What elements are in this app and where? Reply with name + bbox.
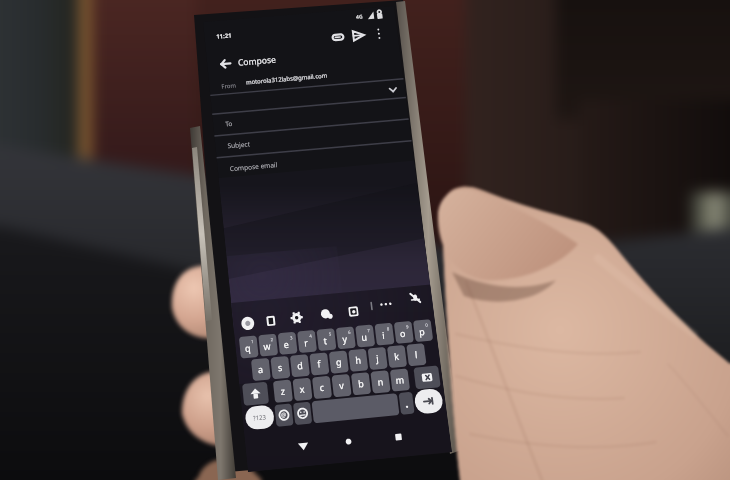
- button[interactable]: Navigate up: [213, 50, 239, 73]
- button[interactable]: At sign: [274, 403, 293, 427]
- button[interactable]: Clipboard: [259, 308, 281, 331]
- button[interactable]: [250, 357, 270, 380]
- button[interactable]: [355, 324, 375, 347]
- button[interactable]: Stickers: [315, 302, 337, 325]
- button[interactable]: Attach file: [325, 26, 351, 49]
- button[interactable]: More options: [368, 21, 392, 46]
- button[interactable]: [389, 368, 409, 391]
- button[interactable]: [406, 343, 426, 366]
- button[interactable]: [370, 370, 390, 393]
- button[interactable]: [335, 326, 355, 349]
- button[interactable]: Home: [333, 428, 365, 457]
- button[interactable]: [393, 320, 413, 343]
- button[interactable]: [331, 373, 351, 396]
- button[interactable]: [348, 348, 368, 371]
- button[interactable]: Shift: [242, 381, 269, 405]
- button[interactable]: Google search: [236, 312, 258, 335]
- button[interactable]: [350, 372, 370, 395]
- button[interactable]: [272, 379, 292, 402]
- button[interactable]: Period: [398, 391, 414, 414]
- button[interactable]: [289, 354, 309, 377]
- button[interactable]: Send: [347, 24, 373, 47]
- button[interactable]: More keyboard options: [372, 293, 393, 313]
- button[interactable]: [309, 352, 329, 375]
- button[interactable]: Enter: [413, 387, 443, 414]
- button[interactable]: Emoji: [292, 401, 311, 424]
- button[interactable]: GIF: [343, 300, 364, 321]
- button[interactable]: [297, 329, 317, 352]
- button[interactable]: [244, 404, 275, 430]
- button[interactable]: Back: [287, 432, 319, 461]
- button[interactable]: [212, 96, 408, 134]
- button[interactable]: [413, 319, 433, 342]
- button[interactable]: [367, 346, 387, 369]
- button[interactable]: Voice input off: [404, 288, 426, 309]
- button[interactable]: Expand recipients: [379, 77, 405, 98]
- button[interactable]: [292, 377, 312, 400]
- button[interactable]: Recent apps: [380, 423, 412, 452]
- button[interactable]: [216, 139, 428, 290]
- button[interactable]: [214, 117, 411, 156]
- button[interactable]: [374, 322, 394, 345]
- button[interactable]: [208, 56, 403, 95]
- button[interactable]: [311, 375, 331, 398]
- button[interactable]: [386, 345, 406, 368]
- button[interactable]: Space: [311, 393, 399, 423]
- button[interactable]: [238, 42, 326, 71]
- button[interactable]: [258, 333, 278, 356]
- button[interactable]: [238, 335, 258, 358]
- button[interactable]: [270, 356, 290, 379]
- button[interactable]: [277, 331, 297, 354]
- button[interactable]: [328, 350, 348, 373]
- button[interactable]: Backspace: [413, 365, 440, 389]
- button[interactable]: Keyboard settings: [285, 306, 307, 329]
- button[interactable]: [316, 328, 336, 351]
